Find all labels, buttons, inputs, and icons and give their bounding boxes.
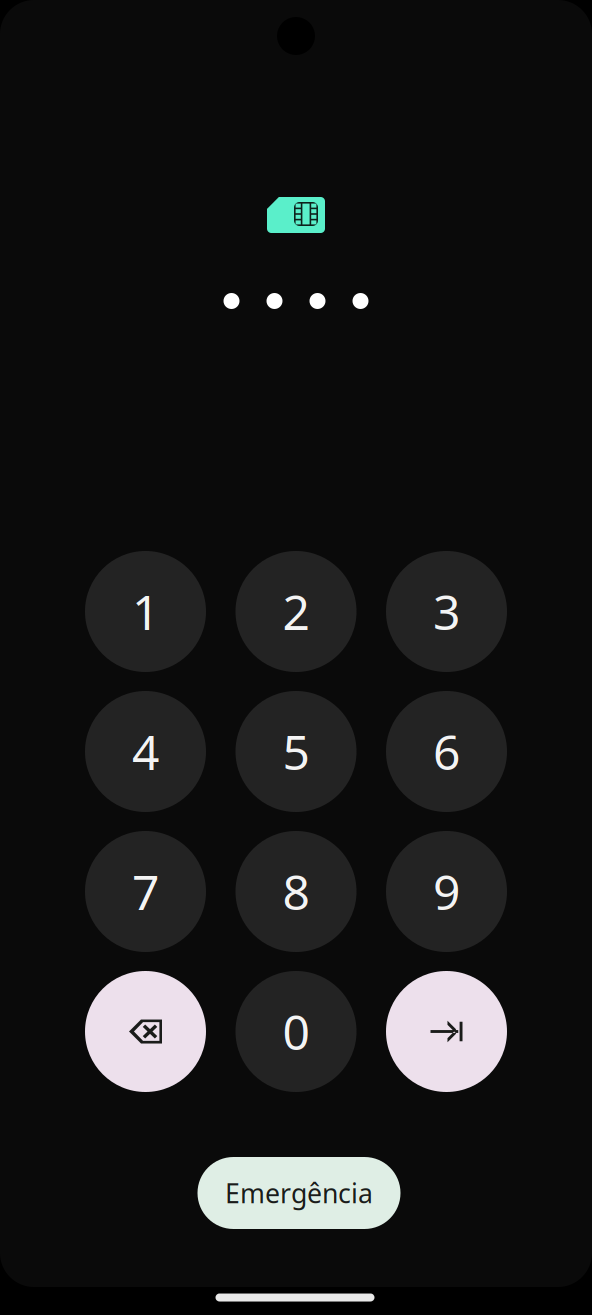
button[interactable]: 8 (235, 831, 356, 952)
staticText: 2 (282, 580, 309, 643)
button[interactable]: 7 (85, 831, 206, 952)
staticText: 4 (132, 720, 159, 783)
button[interactable]: 5 (235, 691, 356, 812)
staticText: 9 (433, 860, 460, 923)
staticText: 7 (132, 860, 159, 923)
button[interactable]: 6 (386, 691, 507, 812)
staticText: Emergência (225, 1175, 373, 1211)
staticText: 1 (132, 580, 159, 643)
button[interactable]: 9 (386, 831, 507, 952)
button[interactable]: Apagar (85, 971, 206, 1092)
button[interactable]: Emergência (197, 1157, 400, 1229)
button[interactable]: 3 (386, 551, 507, 672)
staticText: 6 (433, 720, 460, 783)
button[interactable]: 0 (235, 971, 356, 1092)
button[interactable]: 2 (235, 551, 356, 672)
staticText: 3 (433, 580, 460, 643)
staticText: 5 (282, 720, 309, 783)
button[interactable]: Confirmar (386, 971, 507, 1092)
staticText: 0 (282, 1000, 309, 1063)
button[interactable]: 1 (85, 551, 206, 672)
staticText: 8 (282, 860, 309, 923)
button[interactable]: 4 (85, 691, 206, 812)
